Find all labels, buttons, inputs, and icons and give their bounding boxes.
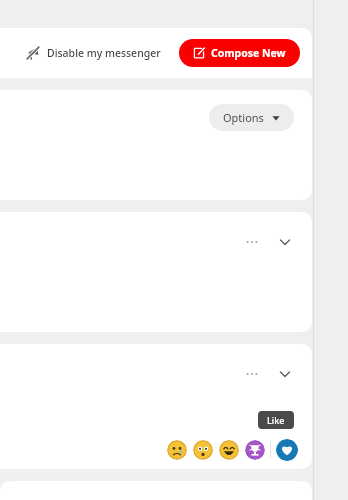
staticText: Options: [223, 110, 264, 125]
button[interactable]: More options: [242, 364, 262, 384]
staticText: Disable my messenger: [47, 46, 161, 60]
button[interactable]: Options: [209, 104, 294, 131]
button[interactable]: Disable my messenger: [22, 42, 165, 64]
button[interactable]: Laugh reaction: [219, 440, 239, 460]
button[interactable]: Trophy reaction: [245, 440, 265, 460]
button[interactable]: Compose New: [179, 39, 300, 67]
button[interactable]: More options: [0, 212, 312, 332]
button[interactable]: Wow reaction: [193, 440, 213, 460]
button[interactable]: Collapse: [276, 365, 294, 383]
button[interactable]: More options: [242, 232, 262, 252]
button[interactable]: Collapse: [276, 233, 294, 251]
button[interactable]: Options: [0, 90, 312, 200]
staticText: Compose New: [211, 46, 286, 60]
button[interactable]: More options: [0, 344, 312, 469]
button[interactable]: Like: [276, 439, 298, 461]
staticText: Like: [267, 414, 285, 426]
button[interactable]: Sad reaction: [167, 440, 187, 460]
